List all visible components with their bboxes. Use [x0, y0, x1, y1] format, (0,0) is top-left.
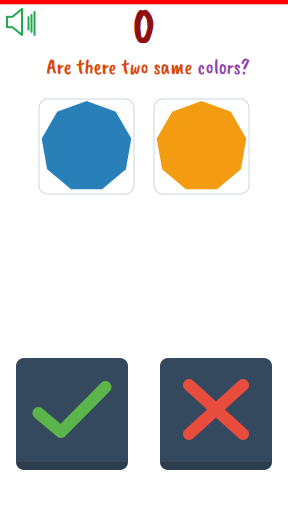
staticText: colors?: [197, 53, 249, 80]
button[interactable]: No: [160, 358, 272, 470]
button[interactable]: Sound: [0, 0, 40, 35]
button[interactable]: Yes: [16, 358, 128, 470]
staticText: 0: [132, 0, 155, 58]
staticText: Are there two same: [46, 53, 197, 80]
